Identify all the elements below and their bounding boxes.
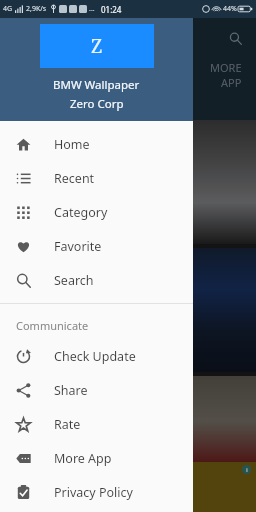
- staticText: Z: [91, 33, 103, 59]
- staticText: BMW Wallpaper: [53, 77, 140, 93]
- button[interactable]: More App: [0, 441, 193, 475]
- staticText: APP: [221, 75, 242, 90]
- staticText: Communicate: [16, 318, 89, 333]
- staticText: i: [246, 466, 248, 474]
- staticText: Privacy Policy: [54, 484, 133, 501]
- button[interactable]: Rate: [0, 407, 193, 441]
- button[interactable]: [0, 376, 256, 512]
- staticText: Recent: [54, 170, 95, 187]
- staticText: 44%: [223, 4, 237, 14]
- button[interactable]: Recent: [0, 161, 193, 195]
- button[interactable]: i: [0, 462, 256, 512]
- staticText: Rate: [54, 416, 81, 433]
- staticText: Category: [54, 204, 108, 221]
- staticText: BUKA: [42, 482, 82, 502]
- staticText: Check Update: [54, 348, 136, 365]
- staticText: 4G: [3, 4, 13, 14]
- button[interactable]: Share: [0, 373, 193, 407]
- staticText: 01:24: [101, 4, 122, 15]
- staticText: 2,9K/s: [26, 4, 47, 14]
- staticText: ...: [89, 4, 95, 14]
- staticText: 5 001: [8, 351, 37, 366]
- button[interactable]: Check Update: [0, 339, 193, 373]
- staticText: Favorite: [54, 238, 102, 255]
- button[interactable]: Home: [0, 127, 193, 161]
- staticText: Search: [54, 272, 94, 289]
- staticText: Share: [54, 382, 88, 399]
- staticText: More App: [54, 450, 112, 467]
- button[interactable]: 5 001: [0, 120, 256, 244]
- button[interactable]: Favorite: [0, 229, 193, 263]
- button[interactable]: Privacy Policy: [0, 475, 193, 509]
- staticText: Zero Corp: [70, 96, 124, 112]
- button[interactable]: Category: [0, 195, 193, 229]
- button[interactable]: Search: [224, 27, 246, 49]
- staticText: Home: [54, 136, 90, 153]
- button[interactable]: Search: [0, 263, 193, 297]
- button[interactable]: 5 001: [0, 248, 256, 372]
- staticText: MORE: [210, 60, 242, 75]
